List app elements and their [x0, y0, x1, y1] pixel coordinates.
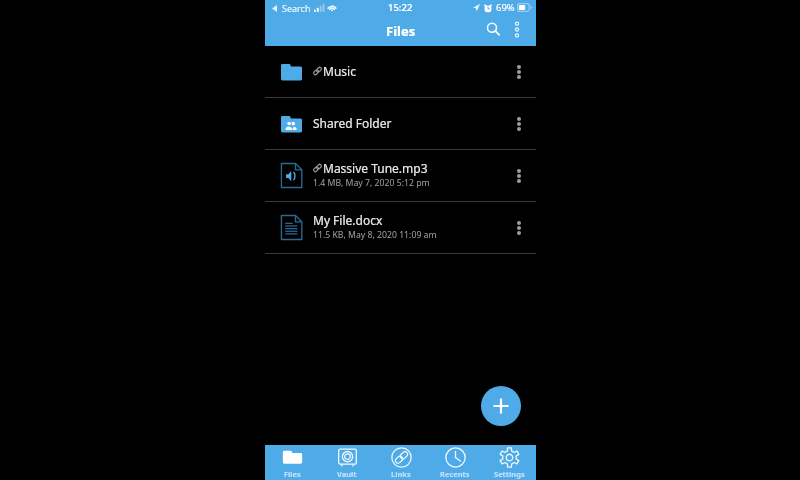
- button[interactable]: More options: [504, 150, 534, 201]
- button[interactable]: Add: [481, 386, 521, 426]
- staticText: Vault: [337, 469, 357, 479]
- staticText: My File.docx: [313, 212, 383, 228]
- button[interactable]: Vault: [320, 445, 374, 480]
- staticText: Files: [386, 22, 416, 40]
- button[interactable]: My File.docx: [265, 202, 536, 253]
- staticText: Massive Tune.mp3: [323, 160, 428, 176]
- staticText: 15:22: [388, 1, 413, 14]
- staticText: Recents: [440, 469, 470, 479]
- button[interactable]: Massive Tune.mp3: [265, 150, 536, 201]
- button[interactable]: More options: [504, 46, 534, 97]
- button[interactable]: Recents: [428, 445, 482, 480]
- button[interactable]: Files: [265, 445, 320, 480]
- staticText: 69%: [496, 1, 515, 14]
- button[interactable]: More options: [504, 202, 534, 253]
- button[interactable]: Shared Folder: [265, 98, 536, 149]
- button[interactable]: Settings: [482, 445, 536, 480]
- staticText: 11.5 KB, May 8, 2020 11:09 am: [313, 229, 437, 241]
- staticText: Files: [284, 469, 301, 479]
- staticText: Search: [282, 2, 311, 14]
- staticText: Shared Folder: [313, 115, 392, 131]
- staticText: Music: [323, 63, 356, 79]
- button[interactable]: More options: [504, 98, 534, 149]
- button[interactable]: Links: [374, 445, 428, 480]
- button[interactable]: Music: [265, 46, 536, 97]
- staticText: Settings: [494, 469, 525, 479]
- staticText: 1.4 MB, May 7, 2020 5:12 pm: [313, 177, 430, 189]
- button[interactable]: Search: [480, 15, 506, 45]
- button[interactable]: More options: [506, 15, 528, 45]
- staticText: Links: [391, 469, 411, 479]
